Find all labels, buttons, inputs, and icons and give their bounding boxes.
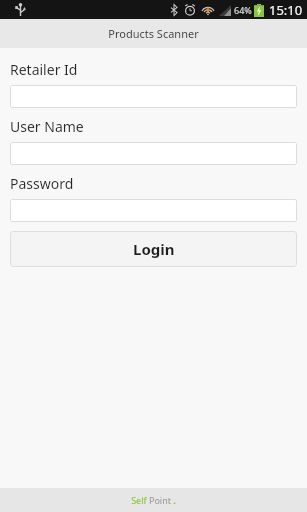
staticText: Login: [133, 239, 175, 259]
staticText: 15:10: [269, 1, 303, 19]
staticText: Retailer Id: [10, 60, 78, 79]
button[interactable]: Password input: [10, 199, 297, 222]
staticText: 64%: [234, 4, 252, 16]
button[interactable]: User Name input: [10, 142, 297, 165]
staticText: Password: [10, 174, 74, 193]
staticText: User Name: [10, 117, 84, 136]
button[interactable]: Retailer Id input: [10, 85, 297, 108]
button[interactable]: Login: [10, 231, 297, 267]
staticText: Self Point .: [131, 494, 176, 506]
staticText: Products Scanner: [108, 26, 199, 41]
